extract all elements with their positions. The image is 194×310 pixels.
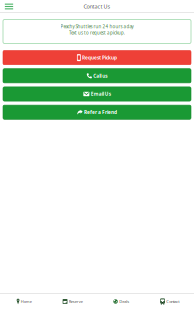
- button[interactable]: Menu: [0, 0, 18, 13]
- staticText: Deals: [119, 299, 129, 304]
- staticText: Contact Us: [83, 3, 110, 10]
- staticText: Contact: [166, 299, 179, 304]
- button[interactable]: Email Us: [3, 87, 191, 101]
- staticText: Call us: [93, 72, 107, 79]
- staticText: Refer a Friend: [84, 109, 117, 115]
- staticText: Request Pickup: [82, 54, 117, 61]
- button[interactable]: Contact: [145, 293, 194, 310]
- staticText: Email Us: [91, 91, 111, 97]
- button[interactable]: Deals: [97, 293, 145, 310]
- button[interactable]: Refer a Friend: [3, 105, 191, 119]
- staticText: Reserve: [69, 299, 83, 304]
- staticText: Peachy Shuttles run 24 hours a day: [60, 23, 133, 29]
- button[interactable]: Request Pickup: [3, 50, 191, 65]
- staticText: Text us to request a pickup.: [69, 30, 125, 36]
- staticText: Home: [21, 299, 32, 304]
- button[interactable]: Reserve: [48, 293, 97, 310]
- button[interactable]: Home: [0, 293, 48, 310]
- button[interactable]: Call us: [3, 69, 191, 83]
